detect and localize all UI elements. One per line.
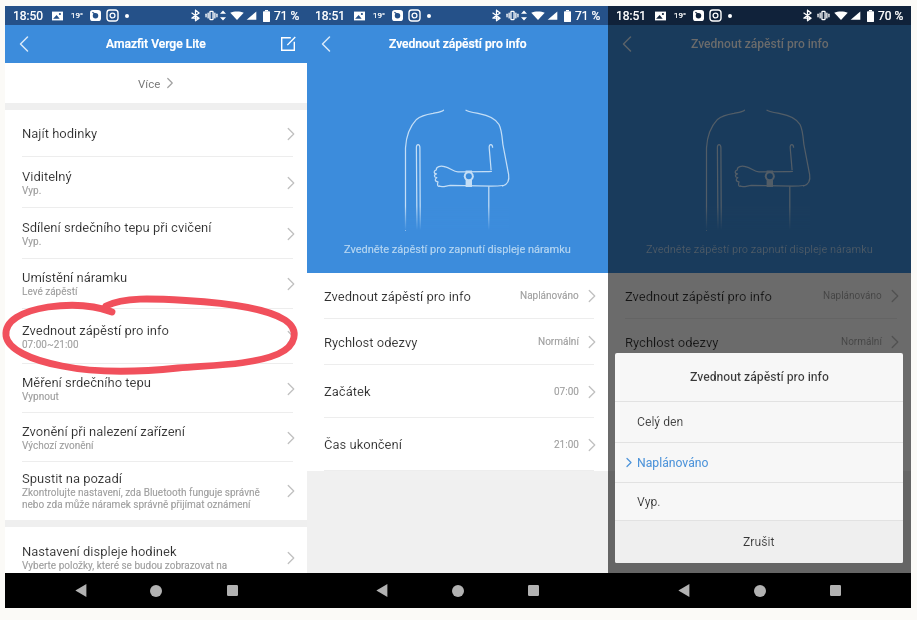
button[interactable]: Čas ukončení xyxy=(307,418,608,471)
staticText: 19° xyxy=(373,11,385,20)
staticText: Naplánováno xyxy=(520,290,579,302)
staticText: Výchozí zvonění xyxy=(22,440,94,452)
staticText: Spustit na pozadí xyxy=(22,471,122,486)
staticText: Zvedněte zápěstí pro zapnutí displeje ná… xyxy=(646,243,873,256)
button[interactable]: Viditelný xyxy=(5,157,307,208)
staticText: Naplánováno xyxy=(637,456,709,470)
staticText: 21:00 xyxy=(857,439,882,451)
button[interactable]: Vyp. xyxy=(615,483,903,520)
button[interactable]: Recents xyxy=(818,573,852,608)
button[interactable]: Back xyxy=(64,573,98,608)
staticText: Zvednout zápěstí pro info xyxy=(625,289,772,304)
button[interactable]: Naplánováno xyxy=(615,443,903,482)
button[interactable]: Měření srdečního tepu xyxy=(5,364,307,413)
staticText: 18:51 xyxy=(315,9,345,23)
staticText: Vypnout xyxy=(22,391,59,403)
button[interactable]: Home xyxy=(139,573,173,608)
button[interactable]: Back xyxy=(365,573,399,608)
button[interactable]: Home xyxy=(441,573,475,608)
staticText: Vyp. xyxy=(22,236,42,248)
staticText: Vyp. xyxy=(22,185,42,197)
staticText: 70 % xyxy=(878,9,904,23)
button[interactable]: Začátek xyxy=(608,365,911,418)
staticText: Rychlost odezvy xyxy=(324,335,418,350)
staticText: Zvednout zápěstí pro info xyxy=(22,323,169,338)
staticText: Levé zápěstí xyxy=(22,286,78,298)
staticText: 18:51 xyxy=(616,9,646,23)
staticText: 19° xyxy=(674,11,686,20)
staticText: Více xyxy=(138,77,161,90)
button[interactable]: Back xyxy=(608,25,646,63)
staticText: Amazfit Verge Lite xyxy=(106,37,206,51)
staticText: Vyberte položky, které se budou zobrazov… xyxy=(22,560,228,572)
button[interactable]: Zrušit xyxy=(615,521,903,563)
staticText: Začátek xyxy=(324,384,371,399)
button[interactable]: Celý den xyxy=(615,402,903,442)
button[interactable]: Rychlost odezvy xyxy=(608,319,911,365)
button[interactable]: Najít hodinky xyxy=(5,110,307,157)
staticText: 19° xyxy=(71,11,83,20)
button[interactable]: Více xyxy=(5,63,307,103)
button[interactable]: Home xyxy=(743,573,777,608)
staticText: Najít hodinky xyxy=(22,126,98,141)
button[interactable]: Zvednout zápěstí pro info xyxy=(5,309,307,364)
staticText: 07:00~21:00 xyxy=(22,339,79,351)
staticText: Viditelný xyxy=(22,169,72,184)
staticText: nebo zda může náramek správně přijímat o… xyxy=(22,499,251,511)
staticText: 07:00 xyxy=(554,386,579,398)
staticText: Normální xyxy=(841,336,882,348)
staticText: Zvonění při nalezení zařízení xyxy=(22,424,185,439)
staticText: Nastavení displeje hodinek xyxy=(22,544,177,559)
button[interactable]: Zvednout zápěstí pro info xyxy=(608,273,911,319)
button[interactable]: Rychlost odezvy xyxy=(307,319,608,365)
button[interactable]: Edit xyxy=(269,25,307,63)
button[interactable]: Začátek xyxy=(307,365,608,418)
button[interactable]: Sdílení srdečního tepu při cvičení xyxy=(5,208,307,259)
button[interactable]: Back xyxy=(307,25,345,63)
staticText: Celý den xyxy=(637,415,684,429)
button[interactable]: Nastavení displeje hodinek xyxy=(5,535,307,581)
staticText: Vyp. xyxy=(637,495,661,509)
staticText: Měření srdečního tepu xyxy=(22,375,151,390)
button[interactable]: Back xyxy=(667,573,701,608)
staticText: 71 % xyxy=(575,9,601,23)
staticText: Rychlost odezvy xyxy=(625,335,719,350)
button[interactable]: Zvednout zápěstí pro info xyxy=(307,273,608,319)
button[interactable]: Zvonění při nalezení zařízení xyxy=(5,413,307,462)
staticText: Zvednout zápěstí pro info xyxy=(389,37,527,51)
button[interactable]: Spustit na pozadí xyxy=(5,462,307,520)
button[interactable]: Recents xyxy=(215,573,249,608)
button[interactable]: Umístění náramku xyxy=(5,259,307,309)
staticText: Zvednout zápěstí pro info xyxy=(691,37,829,51)
staticText: Umístění náramku xyxy=(22,270,128,285)
staticText: 21:00 xyxy=(554,439,579,451)
staticText: Zrušit xyxy=(743,535,775,549)
staticText: Zvednout zápěstí pro info xyxy=(324,289,471,304)
button[interactable]: Recents xyxy=(516,573,550,608)
staticText: Zvedněte zápěstí pro zapnutí displeje ná… xyxy=(344,243,571,256)
staticText: Zkontrolujte nastavení, zda Bluetooth fu… xyxy=(22,487,260,499)
staticText: Čas ukončení xyxy=(625,437,703,452)
staticText: 71 % xyxy=(274,9,300,23)
button[interactable]: Čas ukončení xyxy=(608,418,911,471)
staticText: Sdílení srdečního tepu při cvičení xyxy=(22,220,212,235)
staticText: Naplánováno xyxy=(823,290,882,302)
staticText: 18:50 xyxy=(13,9,43,23)
button[interactable]: Back xyxy=(5,25,43,63)
staticText: Normální xyxy=(538,336,579,348)
staticText: Čas ukončení xyxy=(324,437,402,452)
staticText: Zvednout zápěstí pro info xyxy=(690,370,829,384)
